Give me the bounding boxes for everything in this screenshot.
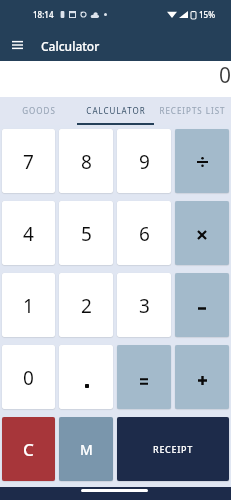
button[interactable]: 6 bbox=[117, 201, 171, 265]
staticText: 3 bbox=[139, 293, 150, 319]
button[interactable]: Divide bbox=[175, 129, 229, 193]
button[interactable]: 1 bbox=[2, 273, 55, 337]
button[interactable]: RECEIPTS LIST bbox=[154, 97, 231, 125]
staticText: 5 bbox=[81, 221, 92, 247]
other: Plus bbox=[198, 376, 207, 385]
other: Divide bbox=[197, 157, 208, 167]
button[interactable]: 7 bbox=[2, 129, 55, 193]
staticText: 0 bbox=[23, 365, 34, 391]
button[interactable]: RECEIPT bbox=[117, 417, 229, 481]
staticText: M bbox=[80, 440, 93, 459]
button[interactable]: 3 bbox=[117, 273, 171, 337]
button[interactable]: GOODS bbox=[0, 97, 77, 125]
staticText: 0 bbox=[219, 61, 231, 90]
staticText: Calculator bbox=[41, 38, 100, 54]
staticText: RECEIPT bbox=[153, 443, 194, 455]
button[interactable]: Menu bbox=[5, 33, 29, 57]
staticText: RECEIPTS LIST bbox=[159, 105, 226, 116]
staticText: 7 bbox=[23, 149, 34, 175]
other: Minus bbox=[198, 307, 206, 310]
other: Equals bbox=[140, 378, 148, 385]
button[interactable]: Equals bbox=[117, 345, 171, 409]
button[interactable]: 9 bbox=[117, 129, 171, 193]
button[interactable]: 4 bbox=[2, 201, 55, 265]
staticText: 2 bbox=[81, 293, 92, 319]
staticText: CALCULATOR bbox=[86, 105, 146, 116]
button[interactable]: M bbox=[59, 417, 113, 481]
staticText: GOODS bbox=[22, 105, 56, 116]
button[interactable]: 5 bbox=[59, 201, 113, 265]
staticText: C bbox=[23, 438, 34, 461]
button[interactable]: 2 bbox=[59, 273, 113, 337]
button[interactable]: Multiply bbox=[175, 201, 229, 265]
other: Multiply bbox=[198, 231, 206, 239]
staticText: 6 bbox=[139, 221, 150, 247]
staticText: 9 bbox=[139, 149, 150, 175]
button[interactable]: 8 bbox=[59, 129, 113, 193]
staticText: 4 bbox=[23, 221, 34, 247]
button[interactable] bbox=[59, 345, 113, 409]
button[interactable]: CALCULATOR bbox=[77, 97, 154, 125]
staticText: 1 bbox=[23, 293, 34, 319]
button[interactable]: Plus bbox=[175, 345, 229, 409]
button[interactable]: Minus bbox=[175, 273, 229, 337]
staticText: 15% bbox=[199, 9, 215, 20]
button[interactable]: C bbox=[2, 417, 55, 481]
staticText: 8 bbox=[81, 149, 92, 175]
staticText: 18:14 bbox=[33, 9, 54, 20]
button[interactable]: 0 bbox=[2, 345, 55, 409]
